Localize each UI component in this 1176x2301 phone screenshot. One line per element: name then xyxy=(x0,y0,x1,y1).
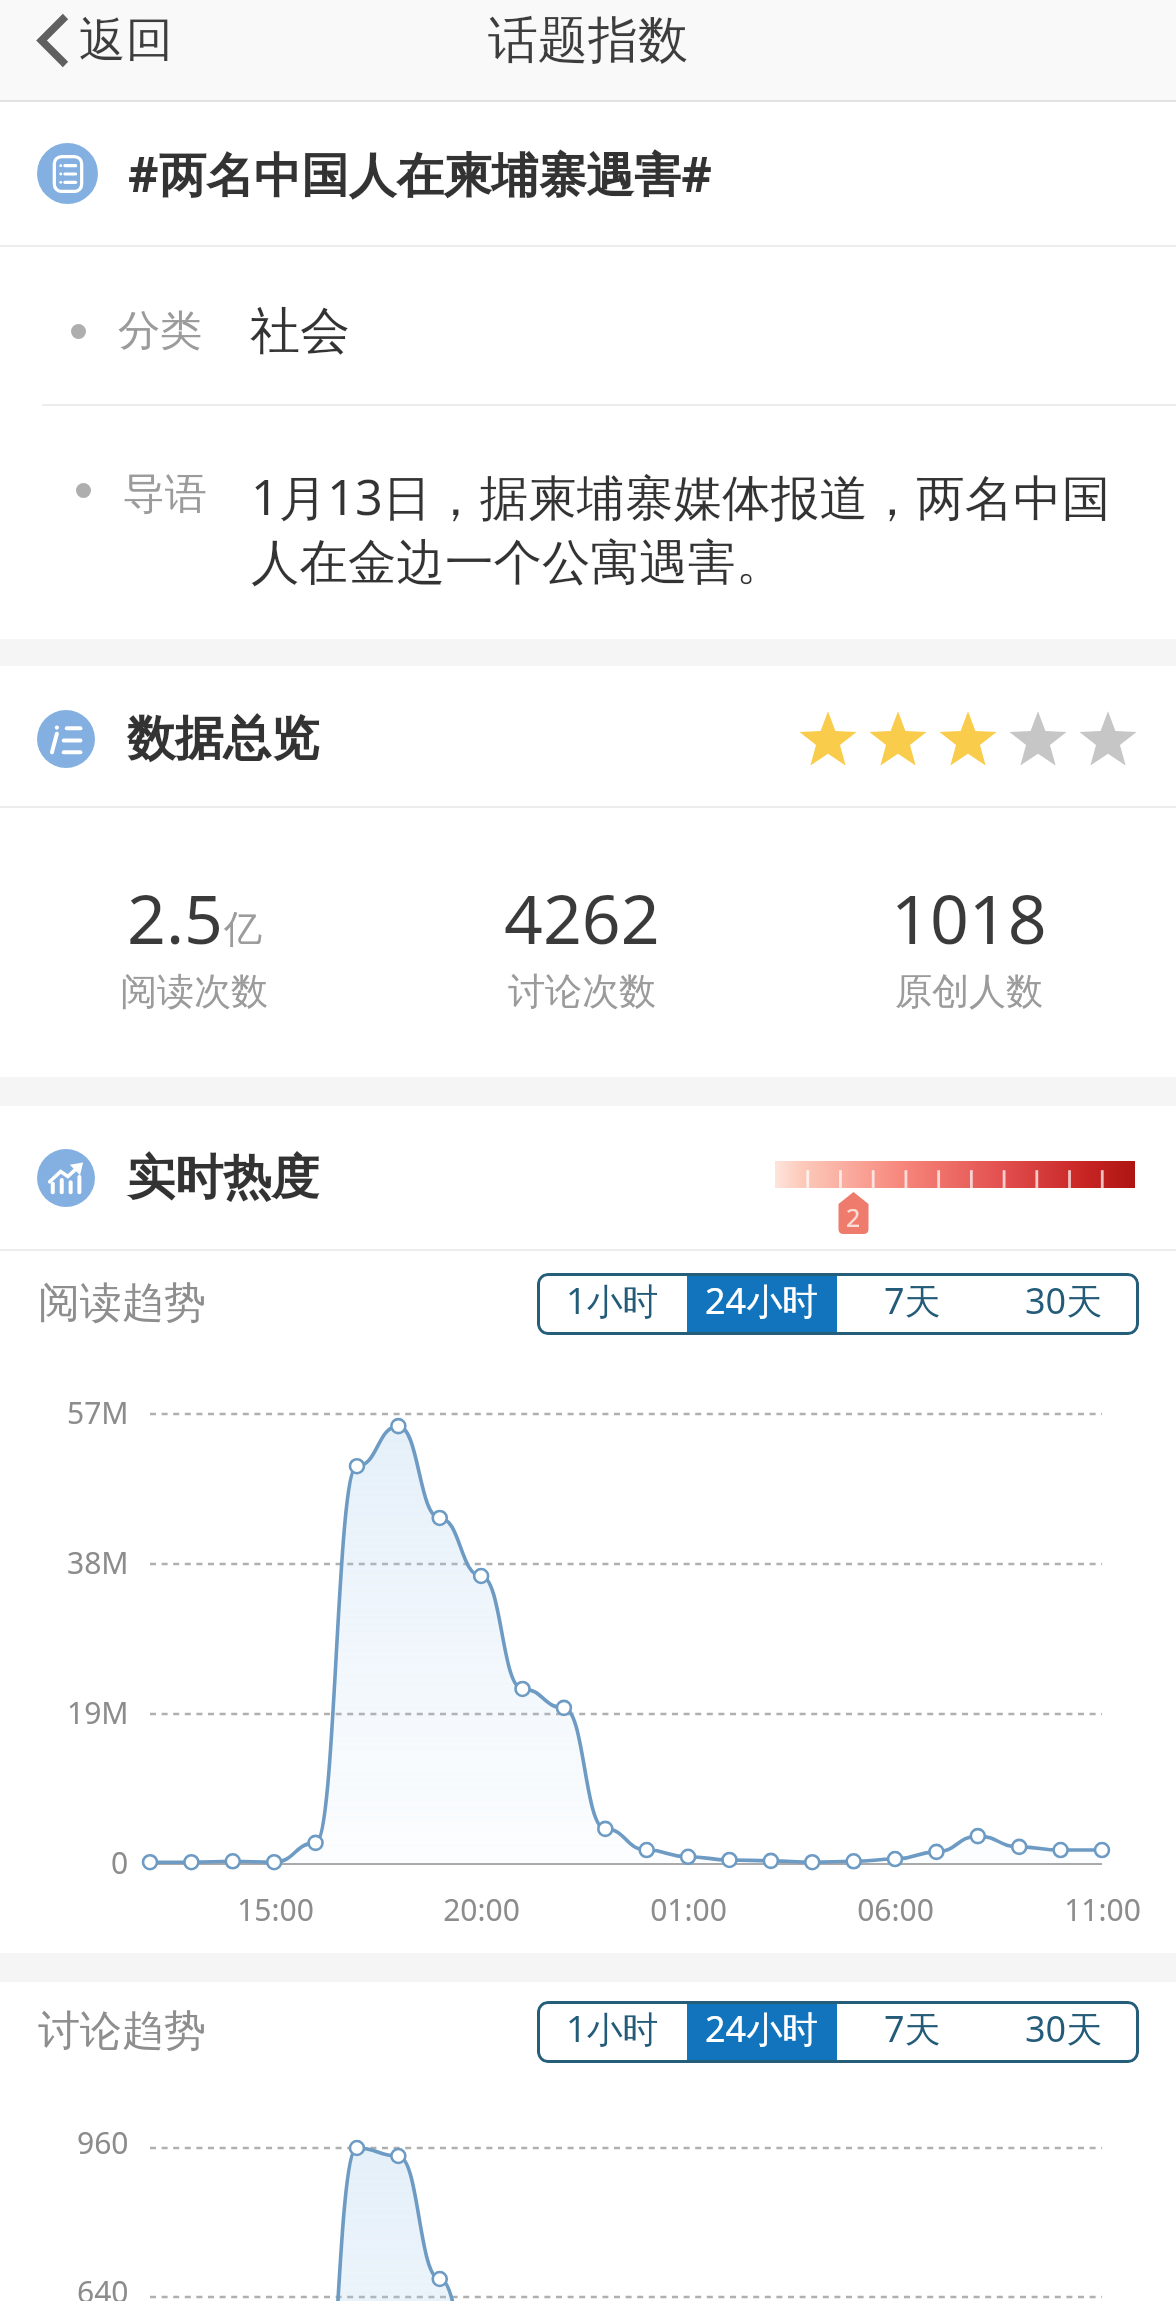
button[interactable]: 30天 xyxy=(988,2001,1139,2063)
staticText: 社会 xyxy=(250,300,350,363)
staticText: 24小时 xyxy=(705,1276,819,1325)
staticText: 57M xyxy=(67,1392,129,1433)
staticText: 1小时 xyxy=(566,1276,659,1325)
staticText: 1小时 xyxy=(566,2004,659,2053)
staticText: 讨论次数 xyxy=(508,968,656,1015)
staticText: 7天 xyxy=(884,1276,941,1325)
staticText: 11:00 xyxy=(1064,1889,1141,1930)
button[interactable]: 24小时 xyxy=(687,2001,837,2063)
button[interactable]: 返回 Back xyxy=(24,1,187,80)
staticText: 2.5 xyxy=(127,871,224,964)
staticText: 0 xyxy=(111,1842,129,1883)
staticText: 讨论趋势 xyxy=(38,2005,206,2058)
staticText: 分类 xyxy=(118,305,202,358)
button[interactable]: 7天 xyxy=(837,2001,988,2063)
staticText: 960 xyxy=(77,2122,129,2163)
button[interactable]: 24小时 xyxy=(687,1273,837,1335)
staticText: 1018 xyxy=(891,871,1047,964)
staticText: 7天 xyxy=(884,2004,941,2053)
staticText: 2 xyxy=(846,1200,861,1228)
button[interactable]: 1小时 xyxy=(537,2001,687,2063)
staticText: 640 xyxy=(77,2271,129,2301)
button[interactable]: 1小时 xyxy=(537,1273,687,1335)
staticText: 19M xyxy=(67,1692,129,1733)
staticText: 话题指数 xyxy=(488,9,688,72)
staticText: #两名中国人在柬埔寨遇害# xyxy=(128,141,712,206)
staticText: 返回 xyxy=(79,11,173,70)
staticText: 4262 xyxy=(504,871,660,964)
button[interactable]: 7天 xyxy=(837,1273,988,1335)
staticText: 01:00 xyxy=(650,1889,727,1930)
staticText: 38M xyxy=(67,1542,129,1583)
staticText: 24小时 xyxy=(705,2004,819,2053)
staticText: 阅读趋势 xyxy=(38,1277,206,1330)
staticText: 20:00 xyxy=(443,1889,520,1930)
staticText: 实时热度 xyxy=(127,1148,319,1208)
staticText: 阅读次数 xyxy=(120,968,268,1015)
staticText: 1月13日，据柬埔寨媒体报道，两名中国人在金边一个公寓遇害。 xyxy=(251,463,1116,593)
other: 热度指数 xyxy=(775,1161,1135,1241)
staticText: 15:00 xyxy=(237,1889,314,1930)
button[interactable]: 30天 xyxy=(988,1273,1139,1335)
staticText: 30天 xyxy=(1025,1276,1103,1325)
staticText: 30天 xyxy=(1025,2004,1103,2053)
staticText: 数据总览 xyxy=(127,709,319,769)
staticText: 06:00 xyxy=(857,1889,934,1930)
staticText: 亿 xyxy=(224,905,262,953)
staticText: 原创人数 xyxy=(895,968,1043,1015)
button[interactable]: #两名中国人在柬埔寨遇害# xyxy=(0,102,1176,245)
staticText: 导语 xyxy=(123,468,207,521)
